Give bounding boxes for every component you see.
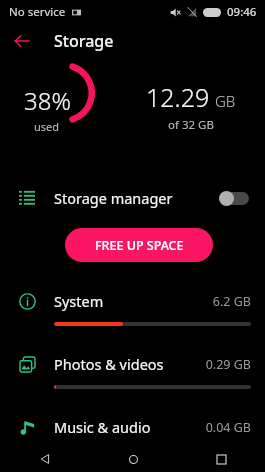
staticText: used <box>34 119 60 134</box>
button[interactable]: Recents <box>177 446 265 472</box>
staticText: FREE UP SPACE <box>95 237 184 254</box>
button[interactable]: Home <box>89 446 177 472</box>
staticText: 0.29 GB <box>205 356 251 373</box>
staticText: System <box>54 291 104 311</box>
staticText: No service <box>9 4 66 20</box>
staticText: GB <box>215 91 236 111</box>
staticText: 09:46 <box>227 4 257 20</box>
button[interactable]: Photos & videos <box>0 343 265 406</box>
button[interactable]: System <box>0 280 265 343</box>
button[interactable]: Storage manager <box>0 178 265 218</box>
staticText: 38% <box>24 84 71 117</box>
staticText: Storage manager <box>54 188 173 208</box>
staticText: 0.04 GB <box>205 419 251 436</box>
staticText: 6.2 GB <box>212 293 251 310</box>
button[interactable]: FREE UP SPACE <box>65 228 213 262</box>
staticText: Music & audio <box>54 417 151 437</box>
button[interactable]: Back <box>0 446 89 472</box>
button[interactable]: Back <box>6 25 38 57</box>
staticText: 12.29 <box>146 80 210 114</box>
staticText: Photos & videos <box>54 354 164 374</box>
staticText: Storage <box>54 30 114 52</box>
staticText: of 32 GB <box>168 117 214 133</box>
button[interactable]: Music & audio <box>0 406 265 469</box>
